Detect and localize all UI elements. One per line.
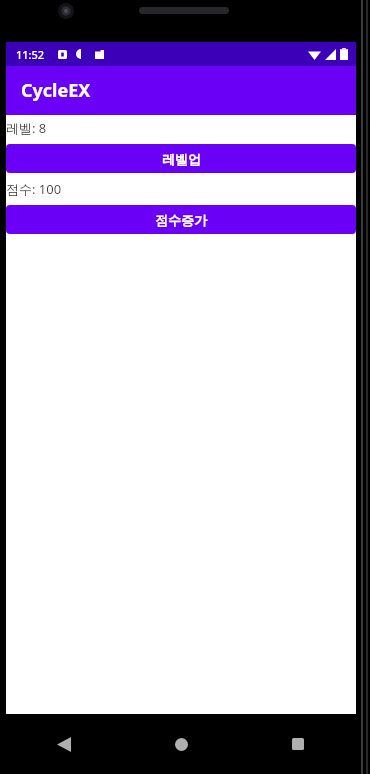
staticText: 레벨: 8 [6,119,47,137]
staticText: 점수증가 [155,212,207,228]
staticText: 점수: 100 [6,180,62,198]
staticText: 11:52 [16,47,45,62]
button[interactable]: 레벨업 [6,144,356,173]
staticText: CycleEX [21,78,91,103]
button[interactable]: Back [29,722,99,766]
button[interactable]: 점수증가 [6,205,356,234]
staticText: 레벨업 [162,151,201,167]
button[interactable]: Home [146,722,216,766]
button[interactable]: Recent apps [263,722,333,766]
